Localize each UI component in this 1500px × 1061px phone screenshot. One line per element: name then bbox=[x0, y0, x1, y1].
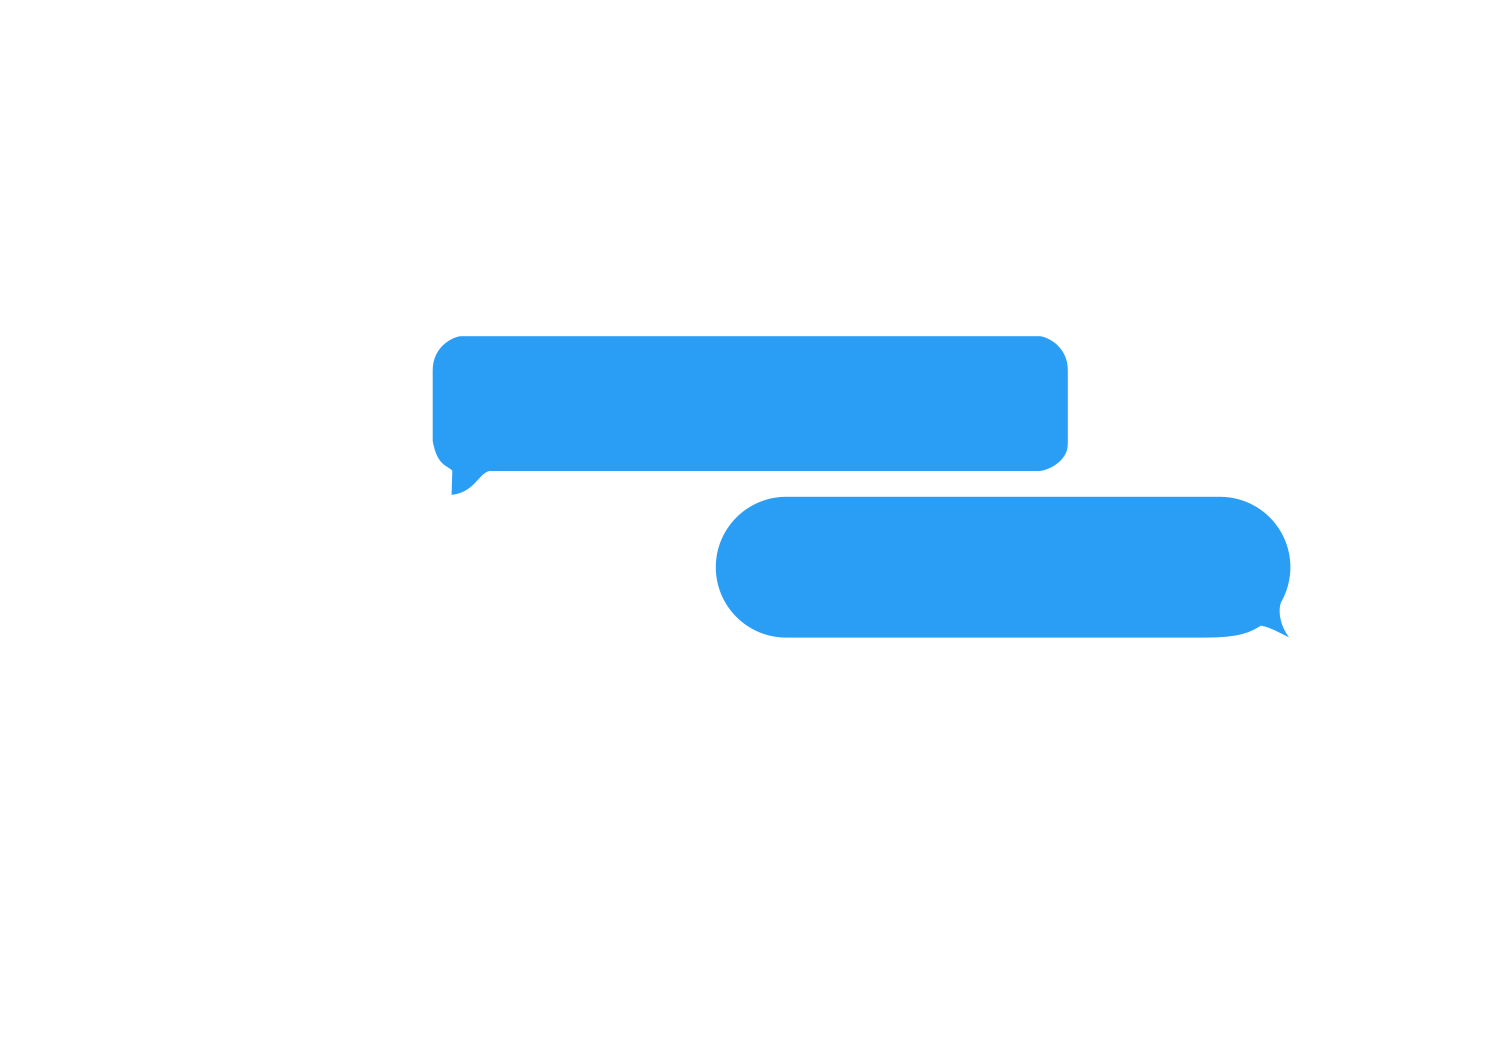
button[interactable]: Message bubble bbox=[0, 0, 1500, 1061]
button[interactable]: Message bubble bbox=[0, 0, 1500, 1061]
